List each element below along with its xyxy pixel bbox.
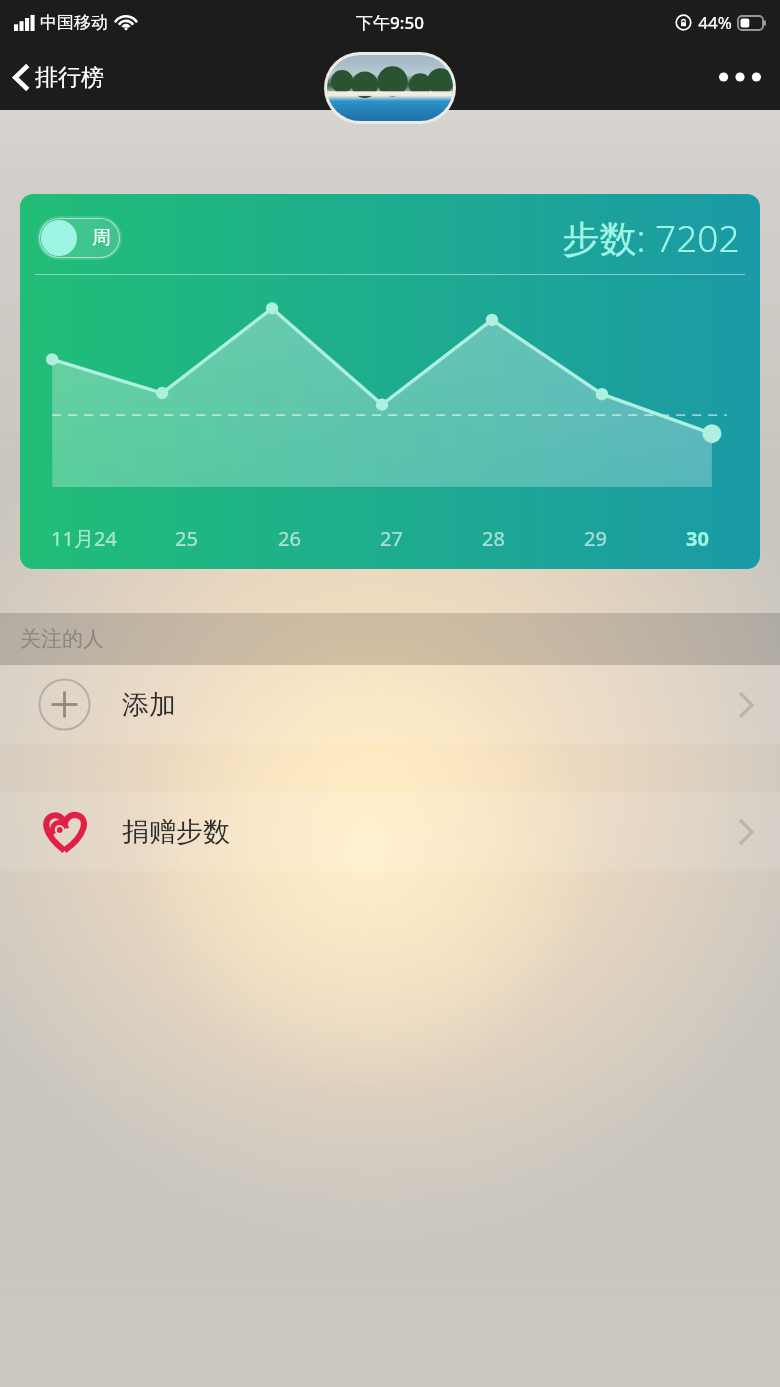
button[interactable]: More options <box>700 58 780 96</box>
button[interactable]: 周 <box>37 216 122 260</box>
button[interactable]: Add <box>0 665 780 744</box>
staticText: 添加 <box>122 688 176 722</box>
staticText: 排行榜 <box>35 63 104 92</box>
staticText: 下午9:50 <box>356 11 424 34</box>
button[interactable]: Profile photo <box>327 55 453 121</box>
staticText: 中国移动 <box>40 12 108 33</box>
staticText: 关注的人 <box>20 626 104 652</box>
staticText: 11月24 <box>51 525 117 552</box>
staticText: 周 <box>92 226 111 250</box>
staticText: 44% <box>698 11 732 34</box>
other: Donate steps <box>38 805 91 858</box>
staticText: 我的主页 <box>340 62 440 93</box>
button[interactable]: 排行榜 <box>0 55 118 100</box>
staticText: 捐赠步数 <box>122 815 230 849</box>
button[interactable]: Donate steps <box>0 792 780 871</box>
other: Add <box>38 678 91 731</box>
staticText: 28 <box>482 525 505 552</box>
staticText: 27 <box>380 525 403 552</box>
button[interactable]: 周 <box>20 194 760 569</box>
staticText: 26 <box>278 525 301 552</box>
staticText: 步数: 7202 <box>562 212 740 263</box>
staticText: 25 <box>175 525 198 552</box>
staticText: 30 <box>686 525 709 552</box>
staticText: 29 <box>584 525 607 552</box>
